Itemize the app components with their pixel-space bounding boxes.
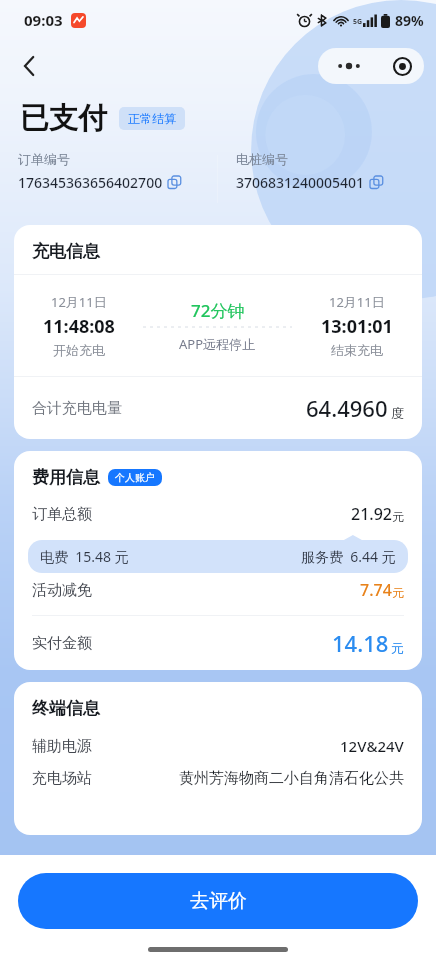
- staticText: 合计充电电量: [32, 399, 122, 418]
- staticText: 7.74: [360, 579, 392, 601]
- button[interactable]: Close: [380, 48, 424, 84]
- staticText: 176345363656402700: [18, 173, 163, 192]
- staticText: 活动减免: [32, 581, 92, 600]
- staticText: 14.18: [332, 628, 389, 658]
- staticText: 正常结算: [128, 111, 176, 126]
- staticText: 电桩编号: [236, 151, 288, 167]
- staticText: 充电场站: [32, 769, 92, 788]
- staticText: 度: [391, 405, 404, 421]
- staticText: 21.92: [351, 503, 392, 525]
- staticText: 72分钟: [191, 299, 245, 322]
- staticText: 12V&24V: [340, 736, 404, 756]
- staticText: 64.4960: [306, 393, 388, 423]
- button[interactable]: More options: [318, 48, 380, 84]
- staticText: 12月11日: [329, 293, 385, 311]
- staticText: 已支付: [20, 100, 107, 137]
- staticText: 费用信息: [32, 467, 100, 488]
- staticText: 12月11日: [51, 293, 107, 311]
- staticText: 元: [392, 509, 404, 524]
- button[interactable]: Back: [8, 44, 52, 88]
- staticText: 去评价: [190, 889, 247, 913]
- staticText: 订单编号: [18, 151, 70, 167]
- staticText: 09:03: [24, 10, 63, 30]
- staticText: 终端信息: [32, 698, 100, 719]
- staticText: 3706831240005401: [236, 173, 365, 192]
- staticText: 充电信息: [32, 241, 100, 262]
- staticText: 元: [392, 585, 404, 600]
- staticText: 元: [391, 640, 404, 656]
- staticText: 结束充电: [331, 342, 383, 358]
- button[interactable]: 176345363656402700: [18, 173, 181, 192]
- staticText: 5G: [353, 17, 363, 27]
- staticText: 电费 15.48 元: [40, 547, 129, 566]
- staticText: 辅助电源: [32, 737, 92, 756]
- button[interactable]: 去评价: [18, 873, 418, 929]
- staticText: APP远程停止: [179, 335, 256, 353]
- staticText: 服务费 6.44 元: [301, 547, 396, 566]
- staticText: 89%: [395, 11, 424, 30]
- staticText: 订单总额: [32, 505, 92, 524]
- button[interactable]: 3706831240005401: [236, 173, 383, 192]
- staticText: 黄州芳海物商二小自角清石化公共: [179, 769, 404, 788]
- staticText: 13:01:01: [321, 314, 393, 339]
- staticText: 开始充电: [53, 342, 105, 358]
- staticText: 个人账户: [115, 471, 155, 484]
- staticText: 实付金额: [32, 634, 92, 653]
- staticText: 11:48:08: [43, 314, 115, 339]
